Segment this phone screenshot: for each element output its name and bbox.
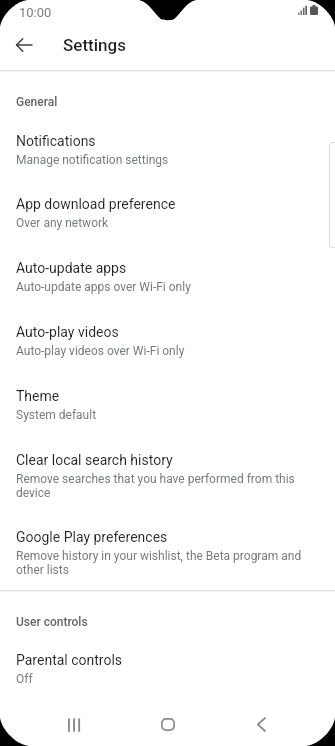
staticText: User controls [16,615,88,629]
staticText: Auto-update apps over Wi-Fi only [16,280,320,294]
staticText: Notifications [16,133,96,149]
staticText: Manage notification settings [16,153,320,167]
staticText: Auto-update apps [16,260,127,276]
button[interactable]: Auto-update apps [0,245,335,309]
staticText: System default [16,408,320,422]
button[interactable]: Parental controls [0,637,335,688]
staticText: Over any network [16,216,320,230]
staticText: Off [16,672,320,686]
staticText: App download preference [16,196,176,212]
staticText: Remove history in your wishlist, the Bet… [16,549,320,577]
button[interactable]: Google Play preferences [0,514,335,589]
button[interactable]: Recent apps [44,702,104,746]
staticText: Clear local search history [16,452,173,468]
staticText: Parental controls [16,652,123,668]
button[interactable]: Back [231,702,291,746]
staticText: Auto-play videos [16,324,119,340]
staticText: Theme [16,388,60,404]
button[interactable]: Clear local search history [0,437,335,514]
button[interactable]: Theme [0,373,335,437]
staticText: Auto-play videos over Wi-Fi only [16,344,320,358]
staticText: Remove searches that you have performed … [16,472,320,500]
button[interactable]: Auto-play videos [0,309,335,373]
button[interactable]: App download preference [0,181,335,245]
button[interactable]: Home [138,702,198,746]
staticText: General [16,95,58,109]
button[interactable]: Notifications [0,118,335,181]
staticText: 10:00 [19,5,52,20]
button[interactable]: Navigate up [6,27,42,63]
staticText: Settings [63,35,126,55]
staticText: Google Play preferences [16,529,168,545]
